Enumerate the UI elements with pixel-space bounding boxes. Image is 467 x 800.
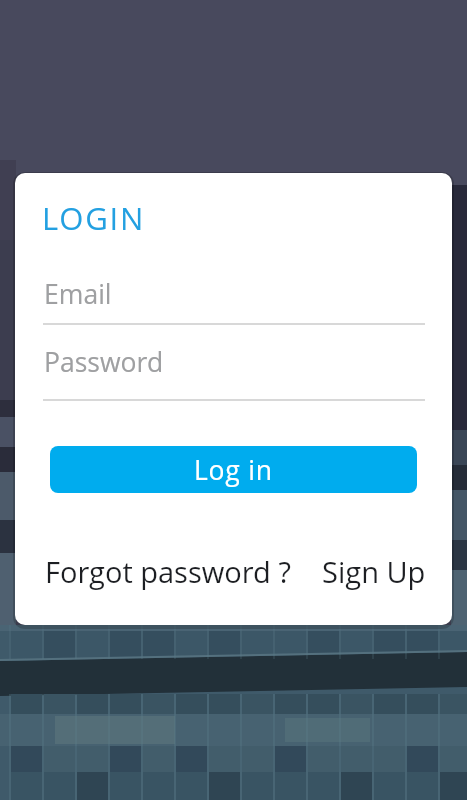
staticText: LOGIN	[42, 197, 146, 239]
button[interactable]: Email	[43, 270, 425, 325]
button[interactable]: Forgot password ?	[45, 552, 291, 591]
button[interactable]: Sign Up	[322, 552, 426, 591]
button[interactable]: Log in	[50, 446, 417, 493]
staticText: Email	[44, 276, 112, 312]
staticText: Log in	[194, 452, 273, 488]
button[interactable]: Password	[43, 338, 425, 401]
staticText: Password	[44, 344, 164, 380]
